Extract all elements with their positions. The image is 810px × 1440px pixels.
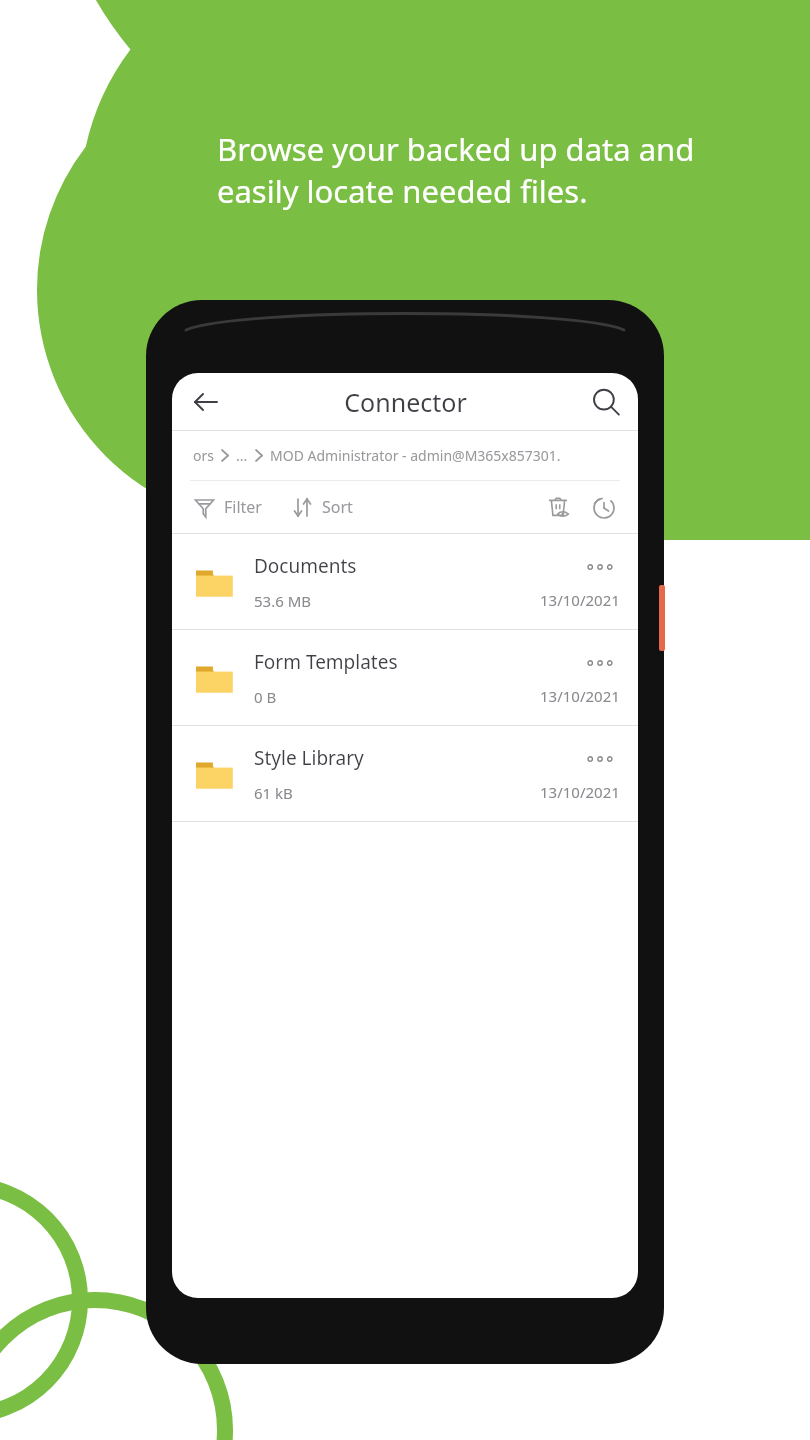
button[interactable]: Show deleted items bbox=[538, 487, 578, 527]
button[interactable]: ors bbox=[172, 431, 638, 480]
staticText: Form Templates bbox=[254, 649, 398, 675]
staticText: 13/10/2021 bbox=[540, 686, 620, 706]
button[interactable]: More options bbox=[580, 746, 620, 772]
staticText: Sort bbox=[322, 496, 353, 518]
button[interactable]: Style Library bbox=[172, 726, 638, 821]
button[interactable]: Filter bbox=[188, 490, 268, 524]
staticText: 13/10/2021 bbox=[540, 782, 620, 802]
staticText: easily locate needed files. bbox=[217, 170, 588, 212]
button[interactable]: More options bbox=[580, 650, 620, 676]
staticText: 53.6 MB bbox=[254, 591, 312, 611]
button[interactable]: Sort bbox=[286, 490, 359, 524]
staticText: 13/10/2021 bbox=[540, 590, 620, 610]
staticText: Style Library bbox=[254, 745, 364, 771]
staticText: ... bbox=[236, 446, 248, 465]
staticText: Filter bbox=[224, 496, 262, 518]
button[interactable]: Version history bbox=[584, 487, 624, 527]
staticText: Connector bbox=[344, 385, 467, 419]
staticText: 61 kB bbox=[254, 783, 293, 803]
staticText: ors bbox=[193, 446, 214, 465]
button[interactable]: Documents bbox=[172, 534, 638, 629]
staticText: Documents bbox=[254, 553, 357, 579]
staticText: MOD Administrator - admin@M365x857301. bbox=[270, 446, 561, 465]
staticText: 0 B bbox=[254, 687, 277, 707]
button[interactable]: Search bbox=[582, 378, 630, 426]
staticText: Browse your backed up data and bbox=[217, 128, 695, 170]
button[interactable]: Form Templates bbox=[172, 630, 638, 725]
button[interactable]: More options bbox=[580, 554, 620, 580]
button[interactable]: Back bbox=[182, 378, 230, 426]
